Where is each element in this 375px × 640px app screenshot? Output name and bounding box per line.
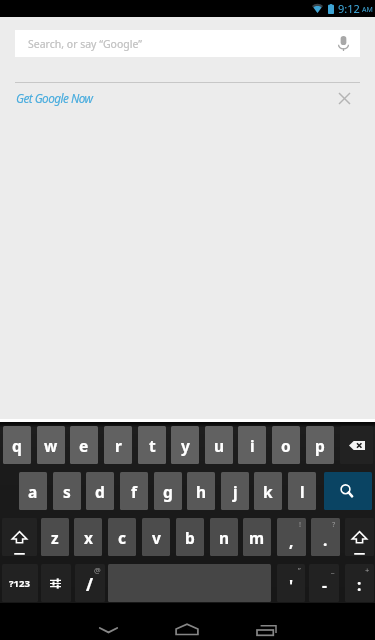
button[interactable]: Get Google Now: [0, 83, 375, 113]
button[interactable]: Shift: [345, 518, 374, 556]
button[interactable]: Voice search: [326, 30, 360, 57]
button[interactable]: n: [210, 518, 238, 556]
button[interactable]: Recent apps: [238, 603, 298, 640]
staticText: z: [51, 527, 59, 548]
button[interactable]: /: [75, 564, 105, 602]
button[interactable]: e: [70, 426, 98, 464]
button[interactable]: f: [120, 472, 148, 510]
button[interactable]: w: [37, 426, 65, 464]
staticText: _: [331, 565, 335, 575]
staticText: e: [79, 435, 89, 456]
button[interactable]: q: [3, 426, 31, 464]
button[interactable]: ,: [277, 518, 306, 556]
staticText: j: [233, 481, 238, 502]
button[interactable]: z: [41, 518, 69, 556]
button[interactable]: s: [53, 472, 81, 510]
button[interactable]: v: [142, 518, 170, 556]
staticText: /: [86, 573, 94, 596]
button[interactable]: o: [272, 426, 300, 464]
staticText: .: [323, 529, 328, 550]
button[interactable]: y: [171, 426, 199, 464]
staticText: n: [219, 527, 230, 548]
staticText: r: [115, 435, 122, 456]
button[interactable]: l: [288, 472, 316, 510]
staticText: m: [249, 527, 265, 548]
button[interactable]: u: [205, 426, 233, 464]
staticText: d: [95, 481, 105, 502]
staticText: +: [365, 565, 370, 575]
staticText: o: [281, 435, 291, 456]
button[interactable]: h: [187, 472, 215, 510]
staticText: u: [214, 435, 225, 456]
button[interactable]: Search: [324, 472, 372, 510]
staticText: Get Google Now: [16, 90, 93, 106]
button[interactable]: Dismiss Get Google Now: [332, 86, 356, 110]
button[interactable]: p: [306, 426, 334, 464]
button[interactable]: k: [254, 472, 282, 510]
staticText: h: [196, 481, 207, 502]
staticText: ?: [332, 519, 336, 529]
staticText: b: [185, 527, 195, 548]
staticText: a: [28, 481, 38, 502]
button[interactable]: j: [221, 472, 249, 510]
button[interactable]: x: [74, 518, 102, 556]
button[interactable]: .: [311, 518, 340, 556]
staticText: :: [357, 574, 362, 595]
staticText: ?123: [9, 577, 31, 590]
button[interactable]: Input settings: [41, 564, 71, 602]
button[interactable]: m: [243, 518, 271, 556]
staticText: ”: [298, 565, 301, 575]
staticText: g: [163, 481, 173, 502]
button[interactable]: c: [108, 518, 136, 556]
staticText: !: [299, 519, 302, 529]
staticText: l: [300, 481, 305, 502]
staticText: AM: [362, 5, 373, 15]
staticText: ': [289, 575, 294, 596]
button[interactable]: Shift: [2, 518, 37, 556]
staticText: t: [149, 435, 156, 456]
button[interactable]: t: [138, 426, 166, 464]
staticText: k: [263, 481, 273, 502]
staticText: q: [12, 435, 22, 456]
button[interactable]: ': [277, 564, 305, 602]
staticText: s: [63, 481, 71, 502]
staticText: ,: [289, 530, 294, 551]
button[interactable]: i: [238, 426, 266, 464]
button[interactable]: b: [176, 518, 204, 556]
button[interactable]: Hide keyboard: [78, 603, 138, 640]
staticText: Search, or say “Google”: [28, 37, 143, 51]
button[interactable]: r: [104, 426, 132, 464]
staticText: f: [131, 481, 137, 502]
button[interactable]: ?123: [2, 564, 38, 602]
staticText: w: [44, 435, 58, 456]
staticText: c: [118, 527, 126, 548]
staticText: i: [250, 435, 255, 456]
staticText: v: [152, 527, 161, 548]
staticText: x: [84, 527, 93, 548]
button[interactable]: d: [86, 472, 114, 510]
staticText: @: [94, 565, 101, 575]
staticText: p: [315, 435, 325, 456]
staticText: 9:12: [338, 1, 360, 16]
staticText: -: [322, 574, 327, 595]
button[interactable]: a: [19, 472, 47, 510]
button[interactable]: Delete: [340, 426, 373, 464]
button[interactable]: g: [154, 472, 182, 510]
button[interactable]: -: [309, 564, 339, 602]
staticText: y: [181, 435, 190, 456]
button[interactable]: Search, or say “Google”: [15, 30, 360, 57]
button[interactable]: Home: [157, 603, 217, 640]
button[interactable]: :: [345, 564, 374, 602]
